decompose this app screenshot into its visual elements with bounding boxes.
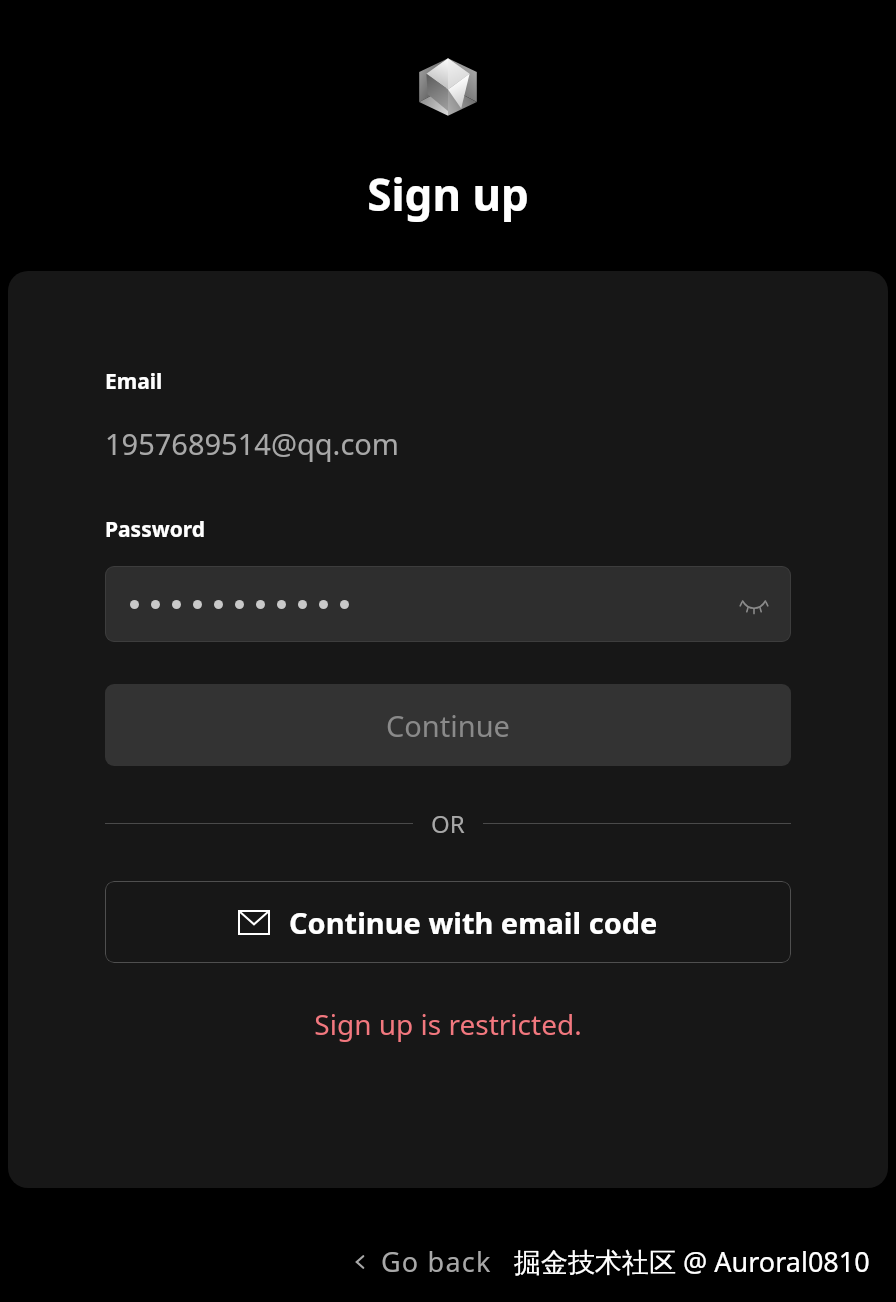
staticText: Email bbox=[105, 367, 163, 396]
staticText: Continue with email code bbox=[289, 903, 658, 942]
staticText: OR bbox=[431, 807, 465, 840]
button[interactable]: Continue with email code bbox=[105, 881, 791, 963]
staticText: Continue bbox=[386, 706, 510, 745]
button[interactable]: Continue bbox=[105, 684, 791, 766]
staticText: Sign up bbox=[367, 164, 529, 224]
button[interactable]: Show password bbox=[737, 587, 771, 621]
staticText: Sign up is restricted. bbox=[105, 1005, 791, 1043]
staticText: Go back bbox=[381, 1243, 492, 1280]
staticText: Password bbox=[105, 515, 206, 544]
button[interactable]: Go back bbox=[347, 1239, 496, 1284]
staticText: 1957689514@qq.com bbox=[105, 424, 399, 463]
staticText: 掘金技术社区 @ Auroral0810 bbox=[514, 1243, 870, 1280]
button[interactable]: Show password bbox=[105, 566, 791, 642]
